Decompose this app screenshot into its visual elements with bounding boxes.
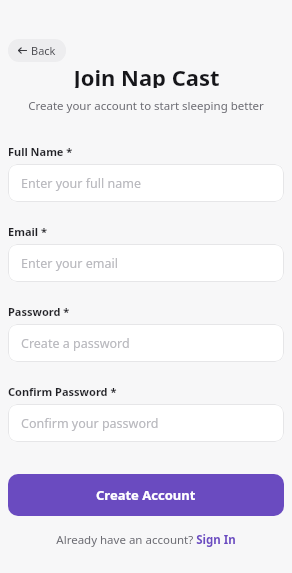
button[interactable]: Confirm your password [8,404,284,442]
staticText: Confirm Password * [8,384,117,399]
staticText: Back [31,43,56,58]
staticText: Enter your full name [21,175,141,192]
staticText: Already have an account? Sign In [56,532,236,548]
button[interactable]: Create Account [8,474,284,516]
staticText: Create a password [21,335,130,352]
button[interactable]: Back [8,39,66,62]
staticText: Enter your email [21,255,118,272]
staticText: Full Name * [8,144,73,159]
staticText: Password * [8,304,70,319]
button[interactable]: Create a password [8,324,284,362]
staticText: Join Nap Cast [73,62,220,88]
staticText: Create Account [96,486,196,504]
staticText: Confirm your password [21,415,159,432]
staticText: Email * [8,224,47,239]
button[interactable]: Enter your full name [8,164,284,202]
staticText: Create your account to start sleeping be… [8,98,284,114]
button[interactable]: Enter your email [8,244,284,282]
button[interactable]: Already have an account? Sign In [8,532,284,548]
